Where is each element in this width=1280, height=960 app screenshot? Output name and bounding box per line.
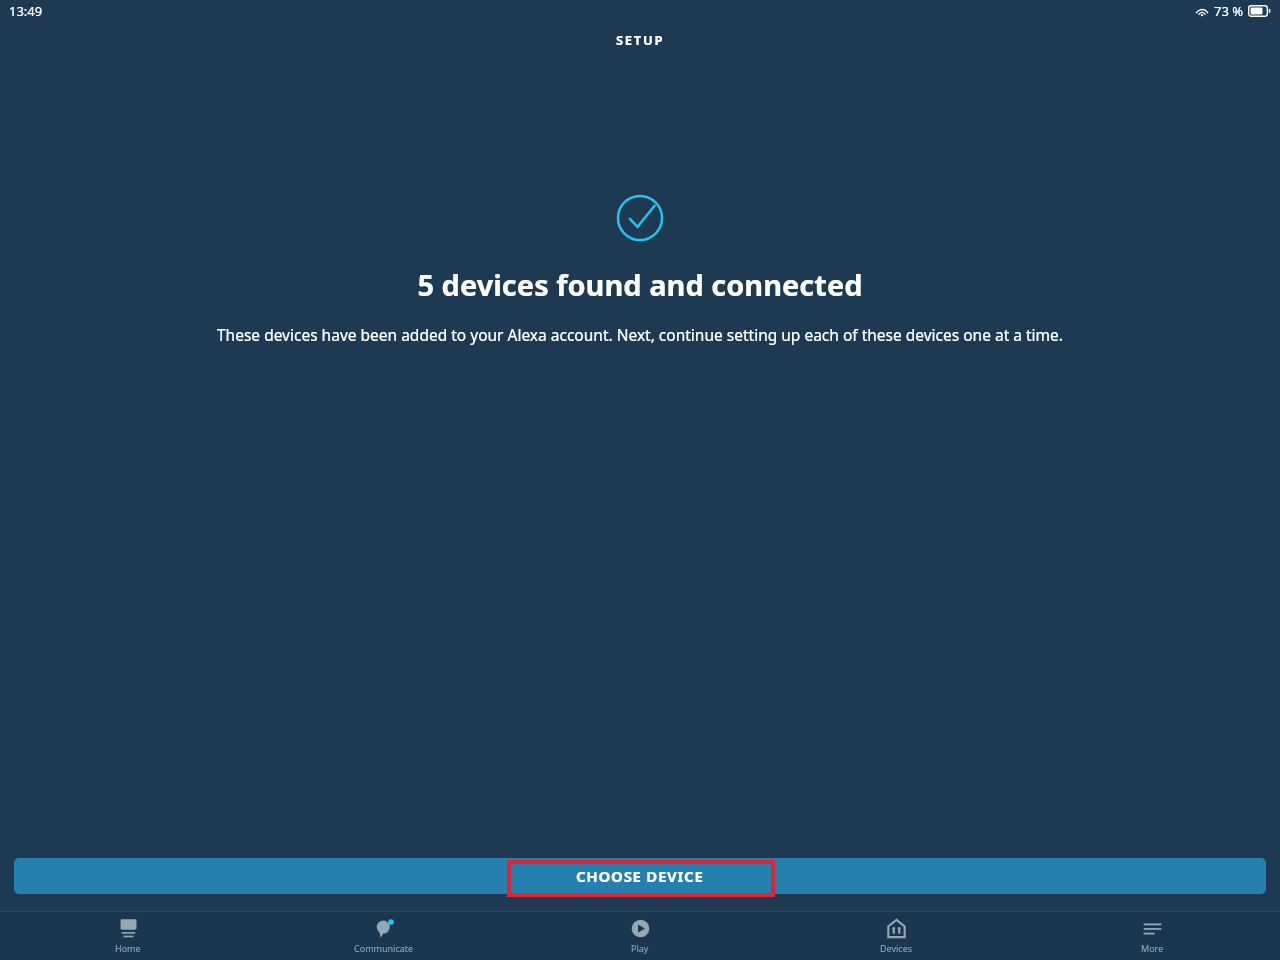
staticText: Play [631,942,649,954]
button[interactable]: Communicate [256,912,512,960]
staticText: Communicate [354,942,414,954]
staticText: 73 % [1214,2,1244,20]
staticText: 13:49 [9,2,43,20]
staticText: Home [115,942,141,954]
staticText: CHOOSE DEVICE [576,866,704,886]
button[interactable]: Play [512,912,768,960]
button[interactable]: CHOOSE DEVICE [14,858,1266,894]
staticText: Devices [880,942,913,954]
staticText: 5 devices found and connected [417,265,863,304]
staticText: SETUP [616,31,665,49]
button[interactable]: Home [0,912,256,960]
button[interactable]: More [1024,912,1280,960]
staticText: These devices have been added to your Al… [36,324,1244,345]
staticText: More [1141,942,1164,954]
button[interactable]: Devices [768,912,1024,960]
